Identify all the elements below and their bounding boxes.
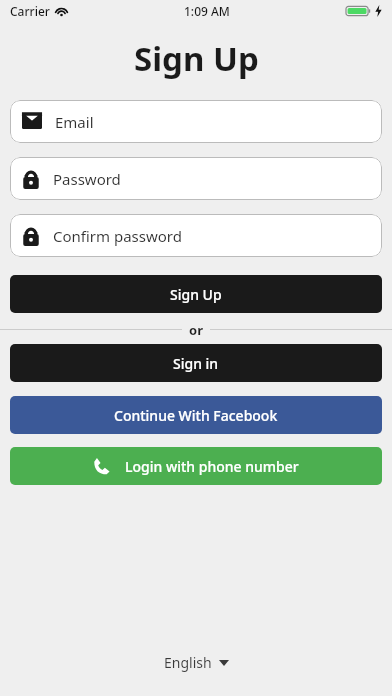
button[interactable]: Password <box>10 157 382 200</box>
staticText: Sign Up <box>134 36 259 81</box>
staticText: Password <box>53 169 121 189</box>
button[interactable]: Continue With Facebook <box>10 396 382 434</box>
staticText: Login with phone number <box>125 457 299 476</box>
other: Password <box>22 226 40 246</box>
staticText: Sign in <box>173 354 219 373</box>
staticText: 1:09 AM <box>184 3 230 19</box>
other: Email <box>22 114 42 129</box>
staticText: Sign Up <box>170 285 222 304</box>
staticText: Email <box>55 112 94 132</box>
button[interactable]: Password <box>10 214 382 257</box>
other: Password <box>22 169 40 189</box>
staticText: Confirm password <box>53 226 182 246</box>
button[interactable]: Sign Up <box>10 275 382 313</box>
staticText: or <box>189 321 203 337</box>
staticText: Carrier <box>10 3 50 19</box>
button[interactable]: Sign in <box>10 344 382 382</box>
staticText: Continue With Facebook <box>114 406 278 425</box>
button[interactable]: English <box>156 649 237 676</box>
button[interactable]: Email <box>10 100 382 143</box>
staticText: English <box>164 653 212 672</box>
button[interactable]: Login with phone number <box>10 447 382 485</box>
